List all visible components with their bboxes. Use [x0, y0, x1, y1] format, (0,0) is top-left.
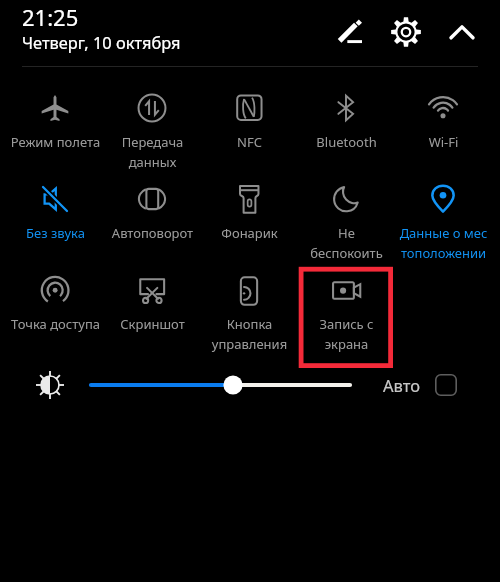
button[interactable]: Режим полета — [7, 82, 104, 169]
button[interactable]: Передача данных — [104, 82, 201, 169]
staticText: Авто — [383, 374, 420, 396]
button[interactable]: Bluetooth — [298, 82, 395, 169]
button[interactable]: Точка доступа — [7, 264, 104, 351]
button[interactable]: Скриншот — [104, 264, 201, 351]
staticText: Точка доступа — [7, 315, 104, 333]
button[interactable]: Edit quick settings — [332, 14, 368, 50]
button[interactable]: NFC — [201, 82, 298, 169]
button[interactable]: Фонарик — [201, 173, 298, 260]
button[interactable]: Collapse panel — [444, 14, 480, 50]
staticText: Автоповорот — [104, 224, 201, 242]
button[interactable]: Кнопка управления — [201, 264, 298, 351]
staticText: Bluetooth — [298, 133, 395, 151]
staticText: Четверг, 10 октября — [22, 31, 181, 53]
staticText: Без звука — [7, 224, 104, 242]
staticText: Данные о мес тоположении — [395, 224, 492, 262]
button[interactable]: Wi-Fi — [395, 82, 492, 169]
button[interactable]: Без звука — [7, 173, 104, 260]
staticText: Запись с экрана — [298, 315, 395, 353]
button[interactable]: Не беспокоить — [298, 173, 395, 260]
button[interactable]: Settings — [388, 14, 424, 50]
button[interactable]: Автоповорот — [104, 173, 201, 260]
staticText: Скриншот — [104, 315, 201, 333]
button[interactable]: Данные о мес тоположении — [395, 173, 492, 260]
staticText: Режим полета — [7, 133, 104, 151]
staticText: Wi-Fi — [395, 133, 492, 151]
button[interactable]: Запись с экрана — [298, 264, 395, 351]
staticText: Фонарик — [201, 224, 298, 242]
staticText: Передача данных — [104, 133, 201, 171]
button[interactable]: Авто — [383, 370, 457, 400]
staticText: 21:25 — [22, 2, 79, 32]
staticText: Не беспокоить — [298, 224, 395, 262]
staticText: Кнопка управления — [201, 315, 298, 353]
staticText: NFC — [201, 133, 298, 151]
